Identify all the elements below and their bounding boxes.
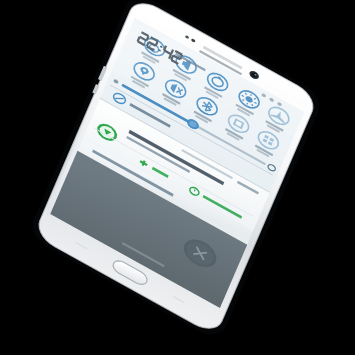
button[interactable]: Samsung Galaxy phone showing notificatio…	[0, 0, 355, 355]
